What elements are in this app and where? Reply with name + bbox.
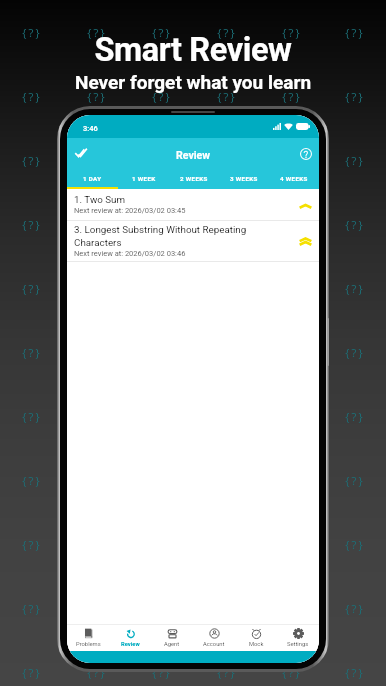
staticText: Account [203, 641, 225, 648]
button[interactable]: Mock [235, 625, 277, 651]
staticText: Next review at: 2026/03/02 03:45 [74, 206, 186, 215]
staticText: {?} [151, 217, 171, 232]
button[interactable]: Settings [277, 625, 319, 651]
staticText: {?} [21, 153, 41, 168]
staticText: {?} [86, 25, 106, 40]
staticText: {?} [86, 217, 106, 232]
staticText: {?} [21, 25, 41, 40]
staticText: 4 WEEKS [280, 175, 308, 182]
staticText: Settings [287, 641, 309, 648]
staticText: 1. Two Sum [74, 194, 126, 205]
staticText: Next review at: 2026/03/02 03:46 [74, 249, 186, 258]
staticText: Review [176, 149, 211, 161]
button[interactable]: 4 WEEKS [269, 172, 319, 189]
staticText: {?} [21, 473, 41, 488]
staticText: {?} [344, 409, 364, 424]
staticText: 1 WEEK [132, 175, 156, 182]
staticText: {?} [344, 665, 364, 680]
staticText: {?} [21, 89, 41, 104]
staticText: {?} [344, 345, 364, 360]
staticText: 3 WEEKS [230, 175, 258, 182]
button[interactable]: Account [193, 625, 235, 651]
button[interactable]: 2 WEEKS [169, 172, 219, 189]
staticText: {?} [151, 89, 171, 104]
button[interactable]: 1 WEEK [118, 172, 169, 189]
staticText: {?} [344, 473, 364, 488]
button[interactable]: 1. Two Sum [67, 189, 319, 221]
button[interactable]: Agent [151, 625, 193, 651]
staticText: {?} [216, 217, 236, 232]
staticText: 3:46 [83, 124, 98, 133]
staticText: {?} [281, 665, 301, 680]
staticText: {?} [216, 89, 236, 104]
staticText: {?} [21, 217, 41, 232]
staticText: {?} [86, 665, 106, 680]
staticText: {?} [151, 665, 171, 680]
staticText: {?} [21, 665, 41, 680]
staticText: {?} [21, 281, 41, 296]
button[interactable]: Help [293, 141, 319, 167]
button[interactable]: 3 WEEKS [219, 172, 269, 189]
staticText: {?} [344, 153, 364, 168]
staticText: {?} [151, 25, 171, 40]
button[interactable]: 3. Longest Substring Without Repeating C… [67, 221, 319, 262]
staticText: {?} [344, 281, 364, 296]
staticText: {?} [281, 25, 301, 40]
staticText: {?} [344, 601, 364, 616]
staticText: {?} [344, 217, 364, 232]
button[interactable]: 1 DAY [67, 172, 118, 189]
staticText: {?} [281, 89, 301, 104]
staticText: {?} [216, 665, 236, 680]
staticText: Review [121, 641, 140, 648]
staticText: {?} [344, 89, 364, 104]
button[interactable]: Problems [67, 625, 109, 651]
button[interactable]: Review [109, 625, 151, 651]
staticText: {?} [21, 345, 41, 360]
staticText: 3. Longest Substring Without Repeating C… [74, 224, 264, 248]
staticText: Smart Review [0, 31, 386, 69]
staticText: Never forget what you learn [0, 71, 386, 93]
staticText: 1 DAY [83, 175, 102, 182]
staticText: {?} [21, 601, 41, 616]
staticText: {?} [86, 89, 106, 104]
staticText: {?} [344, 537, 364, 552]
staticText: 2 WEEKS [180, 175, 208, 182]
staticText: {?} [21, 409, 41, 424]
staticText: {?} [281, 153, 301, 168]
staticText: {?} [281, 217, 301, 232]
staticText: Problems [76, 641, 101, 648]
staticText: Agent [164, 641, 180, 648]
staticText: {?} [21, 537, 41, 552]
staticText: {?} [216, 25, 236, 40]
staticText: {?} [344, 25, 364, 40]
staticText: Mock [249, 641, 264, 648]
button[interactable]: Mark all as reviewed [67, 139, 95, 167]
